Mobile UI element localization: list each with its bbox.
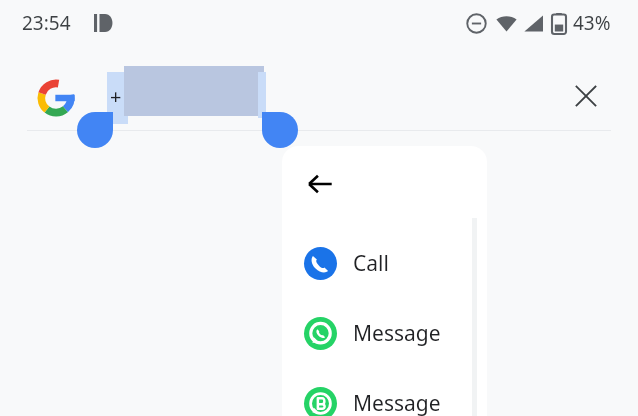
button[interactable]: Message: [282, 372, 487, 416]
staticText: Message: [353, 389, 441, 416]
staticText: Call: [353, 249, 389, 278]
staticText: Message: [353, 319, 441, 348]
button[interactable]: Call: [282, 232, 487, 294]
button[interactable]: Close: [562, 72, 610, 120]
button[interactable]: Selection end handle: [262, 112, 298, 148]
button[interactable]: Back: [296, 160, 344, 208]
staticText: +: [110, 83, 122, 110]
staticText: 43%: [573, 10, 611, 36]
staticText: 23:54: [22, 10, 71, 36]
button[interactable]: Selection start handle: [77, 112, 113, 148]
button[interactable]: Message: [282, 302, 487, 364]
